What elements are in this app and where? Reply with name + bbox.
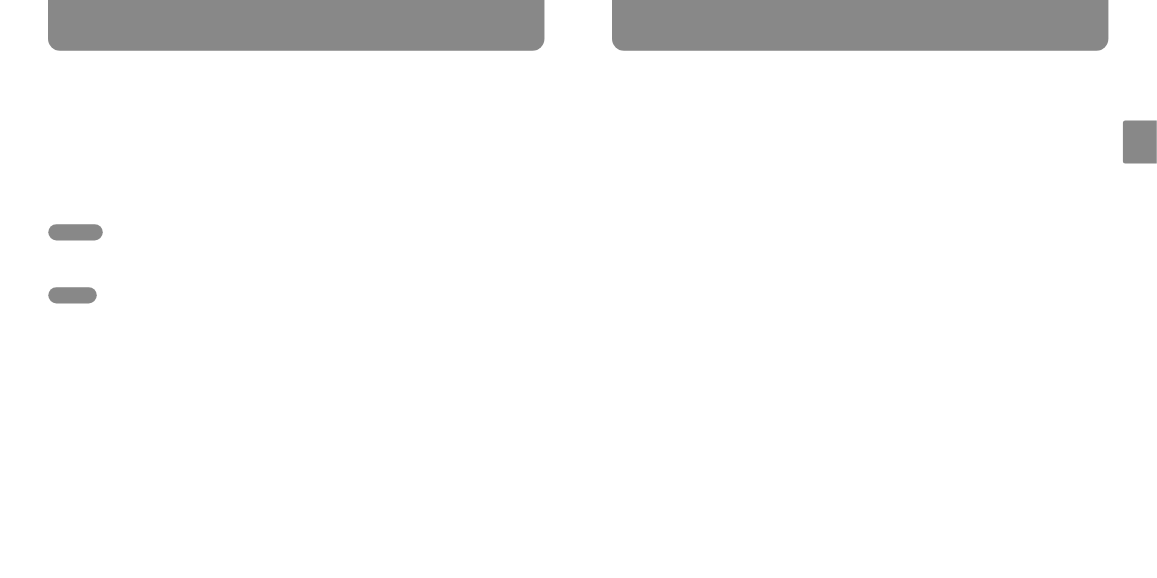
button[interactable] xyxy=(48,224,103,241)
other: Scroll position xyxy=(1123,120,1157,164)
button[interactable] xyxy=(48,287,97,304)
button[interactable] xyxy=(48,0,544,51)
button[interactable] xyxy=(612,0,1108,51)
